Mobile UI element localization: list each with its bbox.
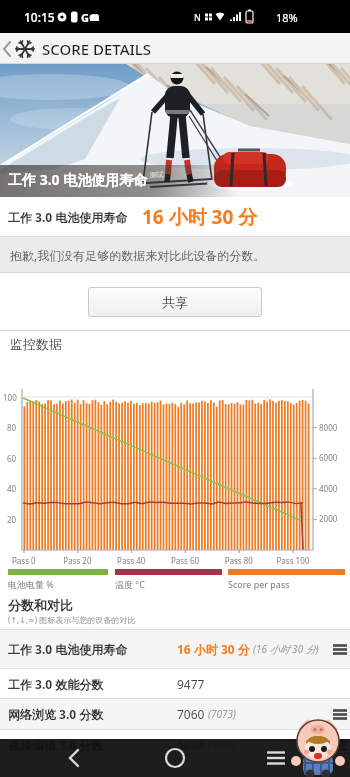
staticText: 分数和对比: [8, 597, 73, 613]
button[interactable]: [333, 709, 347, 720]
staticText: 工作 3.0 电池使用寿命: [8, 170, 148, 189]
staticText: 18%: [276, 10, 298, 25]
staticText: 工作 3.0 效能分数: [8, 676, 104, 692]
staticText: 16 小时 30 分: [142, 204, 258, 230]
staticText: (↑,↓,≈) 图标表示与您的设备的对比: [8, 614, 136, 625]
button[interactable]: [333, 740, 347, 751]
staticText: 5688: [177, 737, 205, 753]
staticText: 9477: [177, 676, 205, 692]
staticText: 网络浏览 3.0 分数: [8, 706, 104, 722]
button[interactable]: 共享: [88, 287, 262, 317]
staticText: (16 小时 30 分): [253, 642, 319, 656]
staticText: 共享: [162, 294, 188, 310]
button[interactable]: [163, 746, 187, 770]
staticText: 16 小时 30 分: [177, 641, 250, 657]
staticText: SCORE DETAILS: [42, 39, 152, 59]
staticText: (5694): [208, 738, 236, 752]
staticText: 抱歉,我们没有足够的数据来对比此设备的分数。: [10, 247, 266, 263]
staticText: 7060: [177, 706, 205, 722]
button[interactable]: [333, 644, 347, 655]
staticText: 监控数据: [10, 336, 62, 352]
button[interactable]: 视频编辑 3.0 分数: [0, 730, 350, 761]
button[interactable]: 网络浏览 3.0 分数: [0, 699, 350, 730]
staticText: 视频编辑 3.0 分数: [8, 737, 104, 753]
button[interactable]: [62, 746, 86, 770]
button[interactable]: 工作 3.0 电池使用寿命: [0, 630, 350, 669]
button[interactable]: [264, 746, 288, 770]
button[interactable]: 工作 3.0 效能分数: [0, 669, 350, 699]
staticText: (7073): [208, 707, 236, 721]
staticText: 10:15: [24, 9, 55, 25]
button[interactable]: SCORE DETAILS: [0, 38, 152, 60]
staticText: 测试: [148, 170, 164, 180]
staticText: 工作 3.0 电池使用寿命: [8, 209, 128, 225]
staticText: 工作 3.0 电池使用寿命: [8, 641, 128, 657]
